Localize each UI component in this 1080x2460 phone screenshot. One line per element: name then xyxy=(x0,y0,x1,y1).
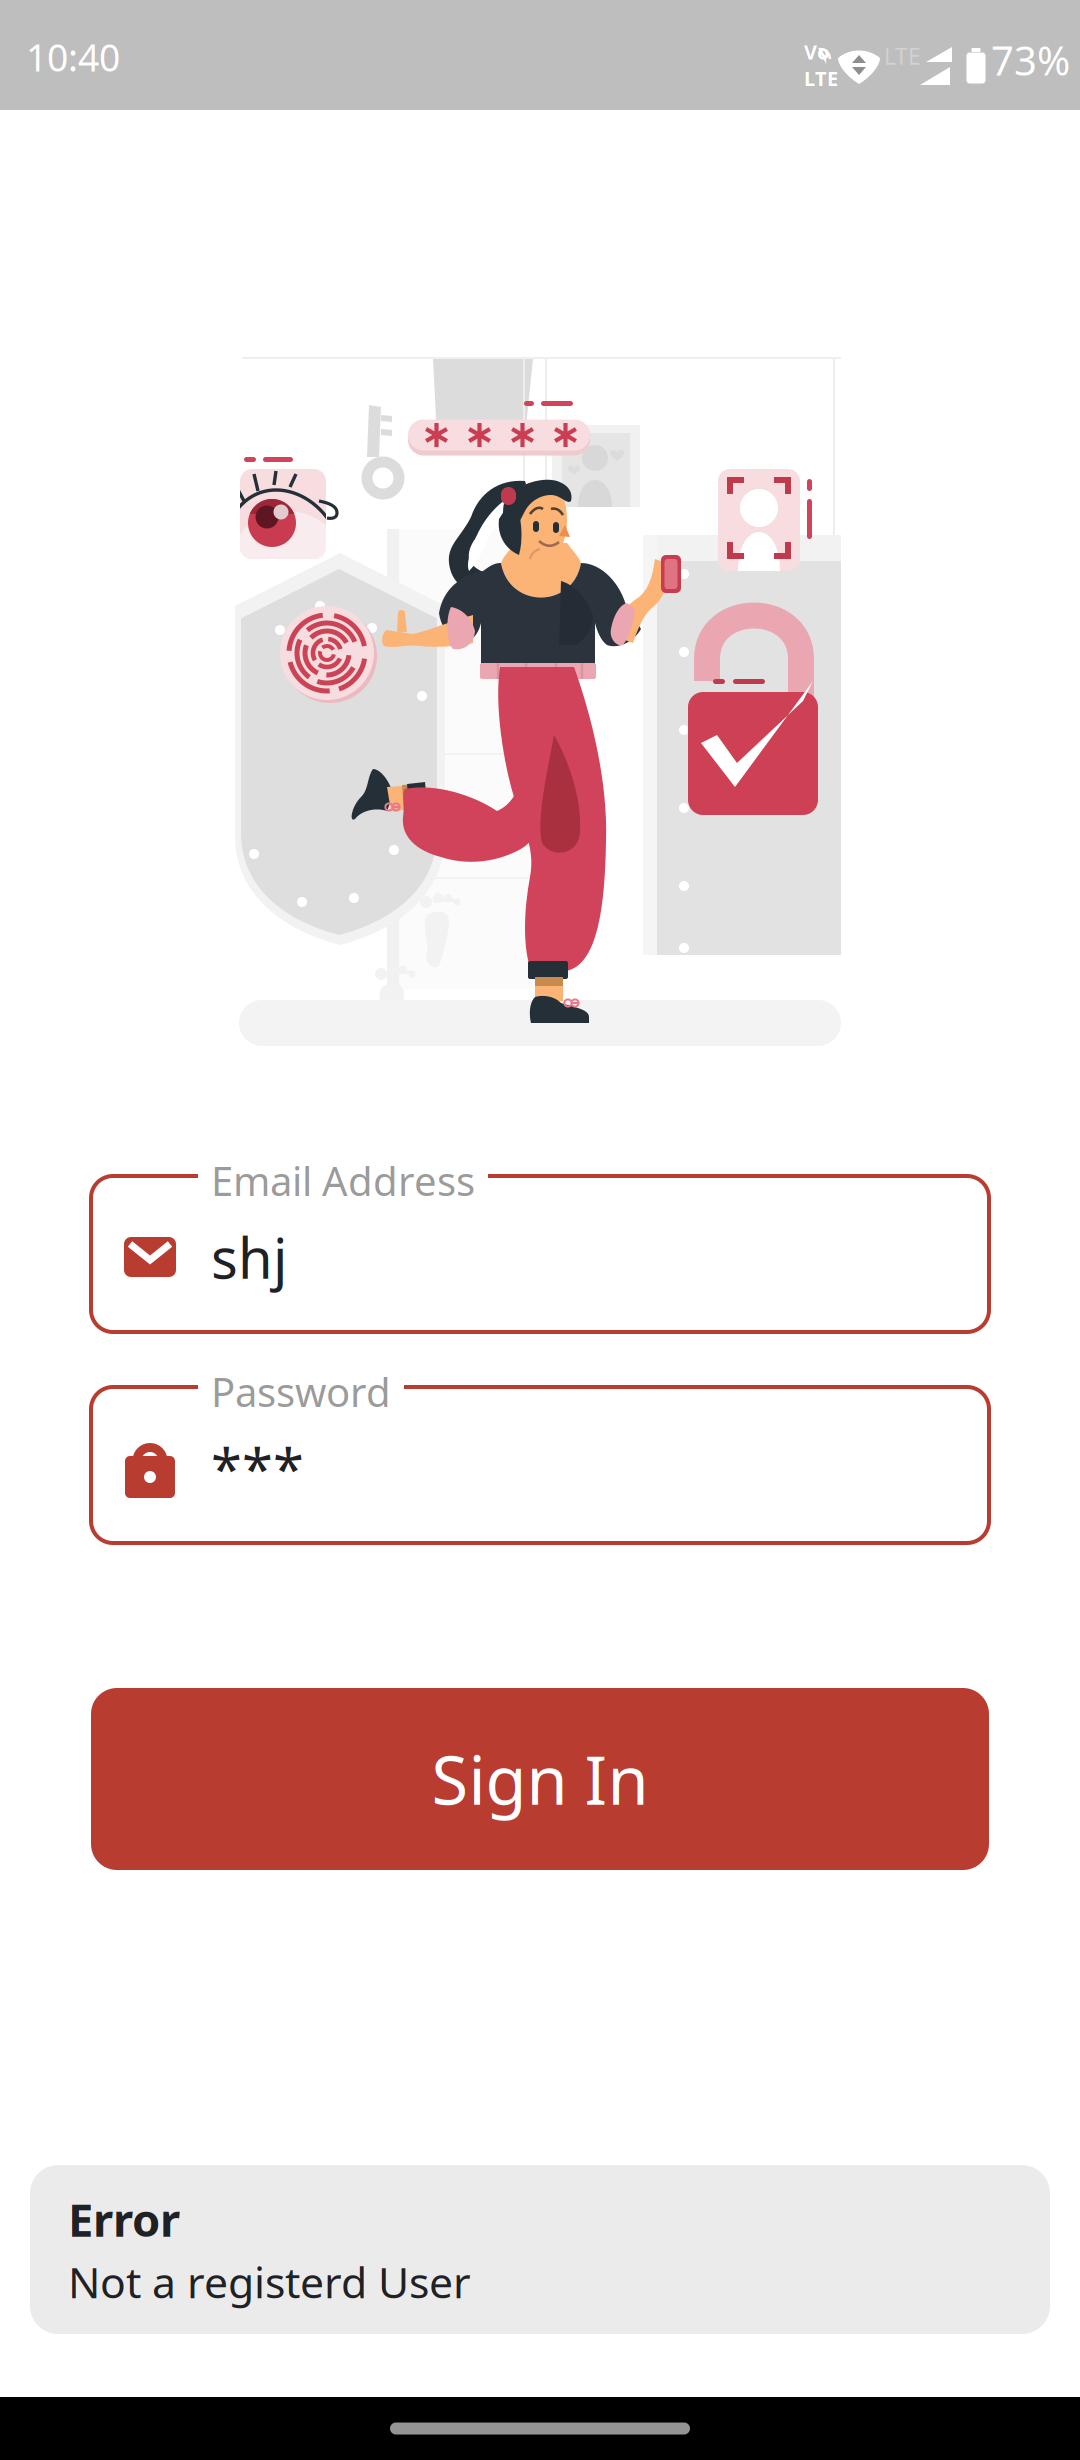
staticText: Password xyxy=(211,1365,391,1418)
staticText: LTE xyxy=(884,41,921,71)
staticText: Vo xyxy=(804,38,830,65)
staticText: Email Address xyxy=(211,1154,475,1207)
button[interactable]: Error xyxy=(30,2165,1050,2334)
staticText: 73% xyxy=(991,33,1070,86)
staticText: Sign In xyxy=(431,1735,648,1823)
button[interactable]: shj xyxy=(91,1176,989,1332)
staticText: shj xyxy=(211,1220,287,1294)
button[interactable]: Sign In xyxy=(91,1688,989,1870)
button[interactable]: *** xyxy=(91,1387,989,1543)
staticText: Error xyxy=(68,2189,180,2249)
staticText: Not a registerd User xyxy=(68,2253,471,2310)
staticText: *** xyxy=(211,1431,304,1505)
staticText: 10:40 xyxy=(26,32,120,82)
staticText: LTE xyxy=(804,65,838,92)
